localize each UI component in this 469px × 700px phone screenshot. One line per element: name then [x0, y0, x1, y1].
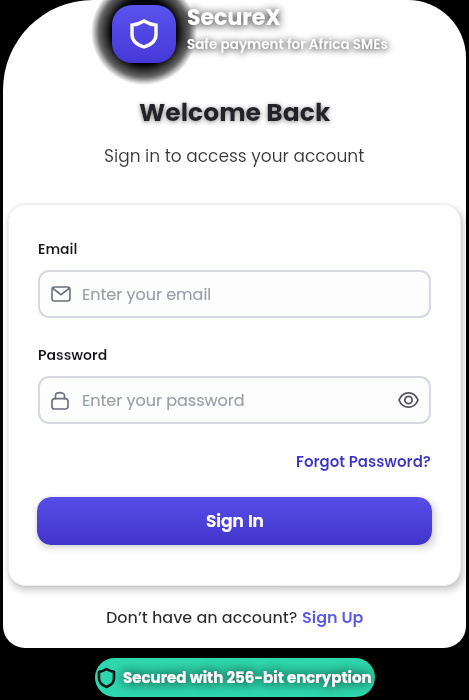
button[interactable]: Forgot Password?	[296, 451, 431, 472]
staticText: Don’t have an account?	[106, 606, 302, 628]
button[interactable]	[394, 386, 422, 414]
staticText: Email	[38, 239, 78, 259]
staticText: Sign In	[206, 509, 264, 533]
staticText: Sign Up	[302, 606, 364, 628]
staticText: SecureX	[187, 2, 281, 33]
staticText: Enter your email	[82, 283, 212, 305]
staticText: Forgot Password?	[296, 451, 431, 472]
button[interactable]: Enter your email	[38, 270, 431, 318]
button[interactable]: Sign Up	[302, 606, 364, 628]
staticText: Safe payment for Africa SMEs	[187, 35, 388, 54]
staticText: Enter your password	[82, 389, 245, 411]
staticText: Password	[38, 345, 108, 365]
button[interactable]: Enter your password	[38, 376, 431, 424]
staticText: Secured with 256-bit encryption	[123, 667, 372, 688]
button[interactable]	[112, 5, 176, 63]
button[interactable]: Secured with 256-bit encryption	[95, 658, 375, 697]
button[interactable]: Sign In	[37, 497, 432, 545]
staticText: Welcome Back	[139, 95, 331, 130]
staticText: Sign in to access your account	[104, 144, 365, 168]
staticText: SecureX	[187, 2, 281, 33]
staticText: Safe payment for Africa SMEs	[187, 35, 388, 54]
staticText: Secured with 256-bit encryption	[123, 667, 372, 688]
